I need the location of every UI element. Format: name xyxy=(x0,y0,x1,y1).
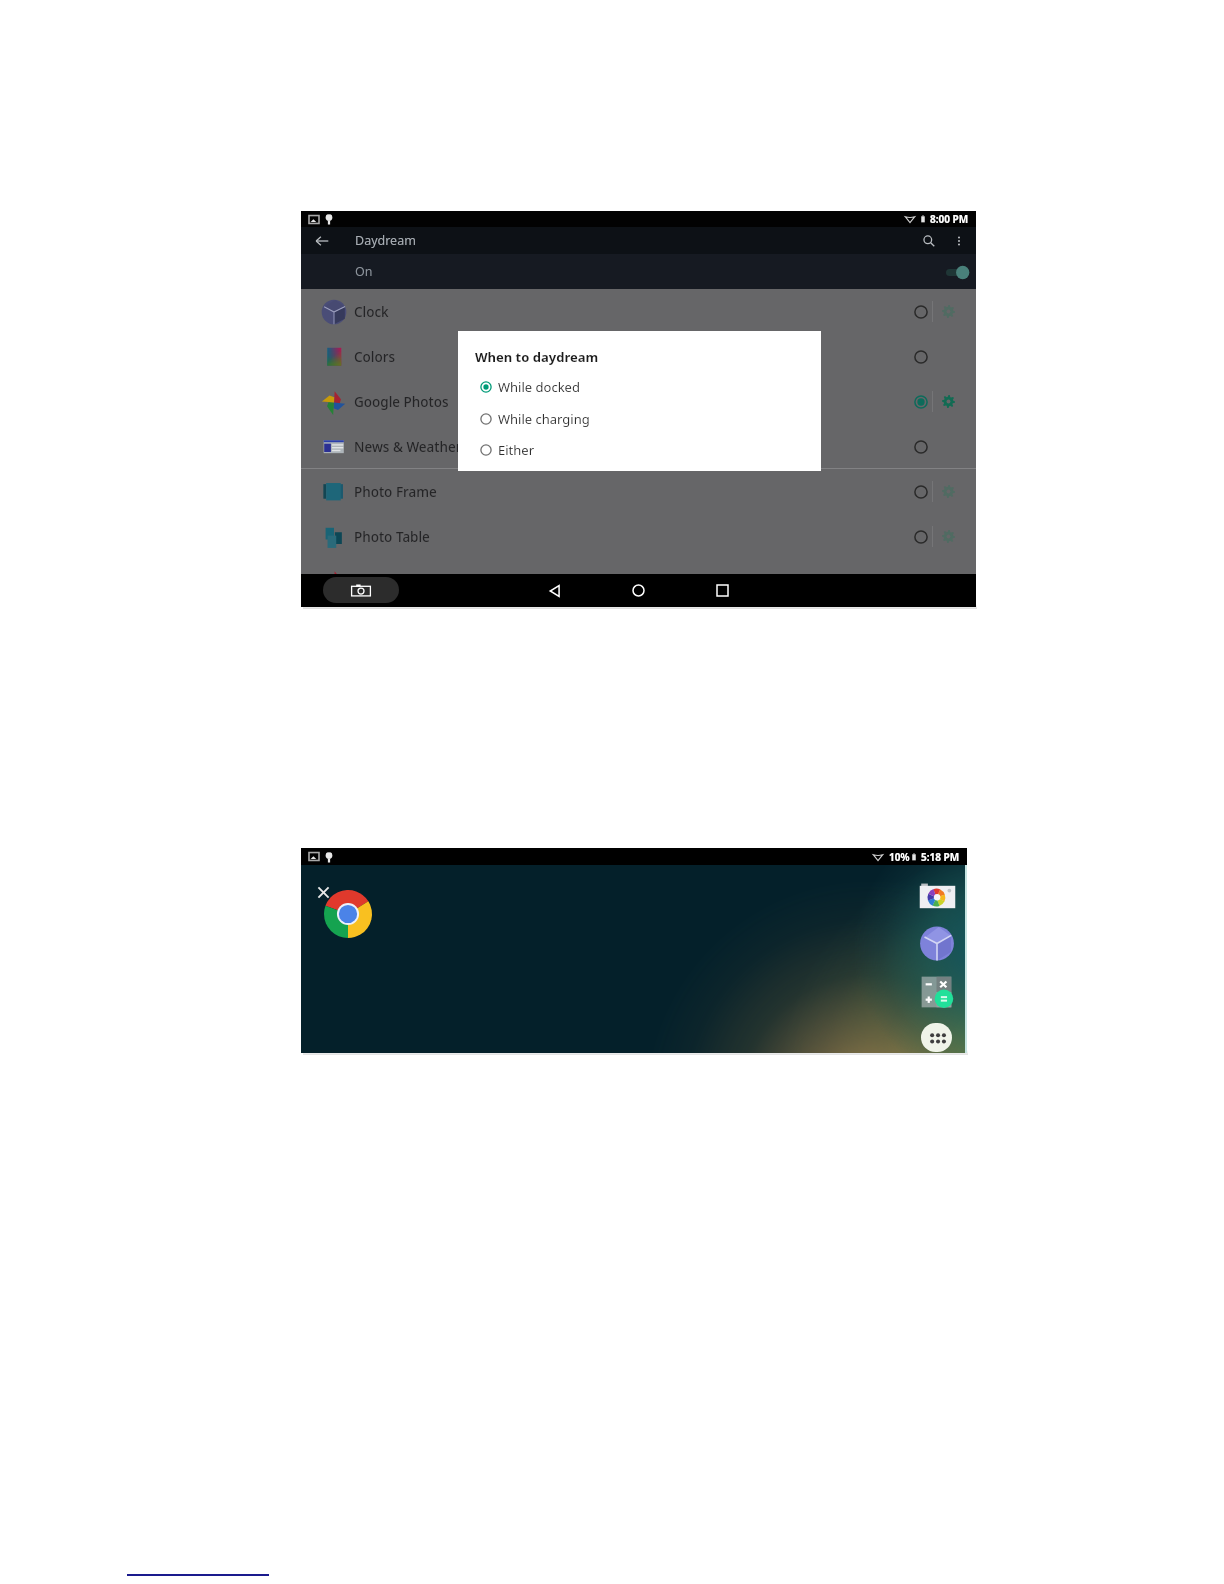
staticText: 10% xyxy=(889,850,910,864)
button[interactable]: Photo Table xyxy=(301,514,976,559)
button[interactable]: Back xyxy=(533,574,577,607)
staticText: Photo Table xyxy=(354,528,430,546)
button[interactable]: Colors xyxy=(301,334,976,379)
button[interactable]: Camera xyxy=(919,883,956,911)
staticText: Daydream xyxy=(355,232,416,249)
button[interactable]: Settings for Clock xyxy=(934,289,962,334)
button[interactable]: Either xyxy=(458,439,821,461)
button[interactable]: Settings for Photo Table xyxy=(934,514,962,559)
staticText: Google Photos xyxy=(354,393,449,411)
staticText: 5:18 PM xyxy=(921,850,960,864)
staticText: When to daydream xyxy=(475,348,599,366)
staticText: Photo Slideshow xyxy=(354,573,461,591)
button[interactable]: Choose Photo Frame xyxy=(905,469,936,514)
button[interactable]: More options xyxy=(946,227,972,254)
button[interactable]: Choose News & Weather xyxy=(905,424,936,469)
staticText: News & Weather xyxy=(354,438,462,456)
staticText: Colors xyxy=(354,348,395,366)
button[interactable]: While charging xyxy=(458,408,821,430)
button[interactable]: Navigate up xyxy=(301,227,343,254)
button[interactable]: Settings for Google Photos xyxy=(934,379,962,424)
button[interactable]: Choose Photo Table xyxy=(905,514,936,559)
staticText: Either xyxy=(498,441,535,459)
button[interactable]: Google Photos xyxy=(301,379,976,424)
button[interactable]: While docked xyxy=(458,376,821,398)
button[interactable]: Choose Photo Slideshow xyxy=(905,559,936,604)
button[interactable]: Photo Slideshow xyxy=(301,559,976,604)
button[interactable]: Daydream on/off xyxy=(942,261,972,283)
button[interactable]: Calculator xyxy=(921,976,952,1008)
button[interactable]: Search xyxy=(912,227,946,254)
button[interactable]: Home xyxy=(616,574,660,607)
staticText: Photo Frame xyxy=(354,483,437,501)
button[interactable]: Clock xyxy=(301,289,976,334)
button[interactable]: Choose Google Photos xyxy=(905,379,936,424)
staticText: While charging xyxy=(498,410,590,428)
button[interactable]: Choose Clock xyxy=(905,289,936,334)
button[interactable]: Choose Colors xyxy=(905,334,936,379)
staticText: On xyxy=(355,263,373,280)
button[interactable]: Screenshot xyxy=(323,577,399,603)
button[interactable]: Clock xyxy=(919,925,955,962)
button[interactable]: All apps xyxy=(921,1023,952,1052)
staticText: While docked xyxy=(498,378,580,396)
staticText: 8:00 PM xyxy=(930,212,969,226)
button[interactable]: Settings for Photo Frame xyxy=(934,469,962,514)
button[interactable]: News & Weather xyxy=(301,424,976,469)
button[interactable]: Close Chrome xyxy=(316,885,331,900)
button[interactable]: Recent apps xyxy=(700,574,744,607)
staticText: Clock xyxy=(354,303,389,321)
button[interactable]: Photo Frame xyxy=(301,469,976,514)
